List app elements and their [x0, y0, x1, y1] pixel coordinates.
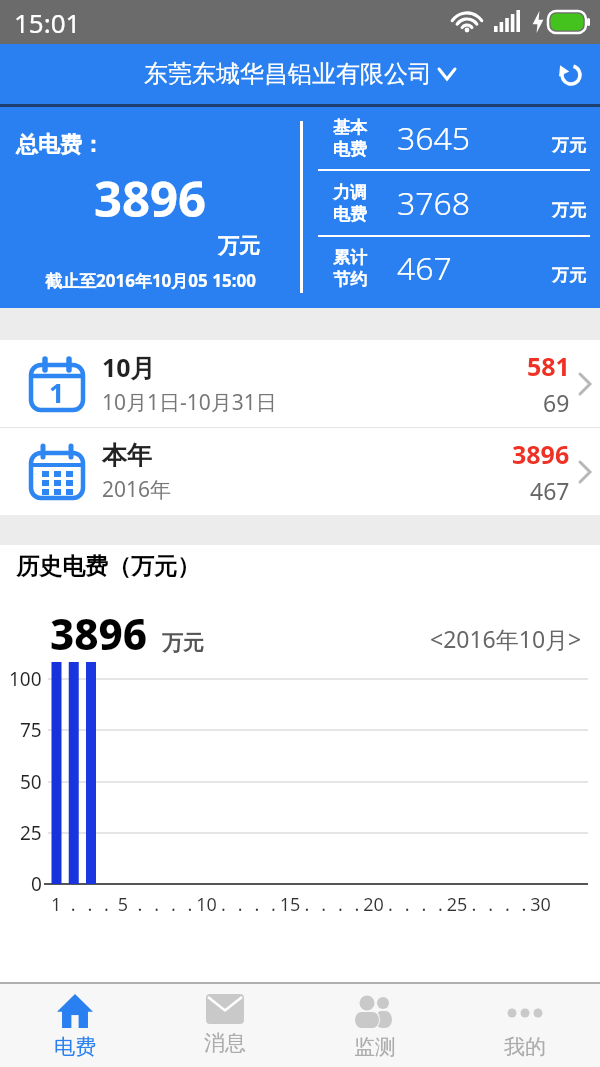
staticText: 2016年 [102, 475, 172, 504]
staticText: 万元 [162, 630, 204, 656]
staticText: 基本 电费 [333, 117, 367, 160]
staticText: 3896 [512, 437, 570, 471]
staticText: 总电费： [16, 131, 104, 159]
staticText: 消息 [204, 1030, 246, 1056]
button[interactable]: 本年 [0, 428, 600, 515]
staticText: 我的 [504, 1034, 546, 1060]
staticText: 截止至2016年10月05 15:00 [45, 269, 256, 292]
staticText: 15:01 [14, 5, 81, 40]
staticText: 万元 [218, 233, 260, 259]
staticText: 本年 [102, 440, 152, 471]
staticText: 力调 电费 [333, 182, 367, 225]
button[interactable]: 消息 [150, 984, 300, 1067]
button[interactable]: 10月 [0, 340, 600, 427]
staticText: 69 [543, 387, 570, 418]
staticText: 万元 [552, 135, 586, 156]
staticText: 监测 [354, 1034, 396, 1060]
staticText: 467 [530, 475, 570, 506]
staticText: 万元 [552, 265, 586, 286]
button[interactable]: <2016年10月> [430, 623, 582, 654]
staticText: 3896 [94, 165, 207, 232]
staticText: 3896 [50, 605, 148, 662]
button[interactable]: 东莞东城华昌铝业有限公司 [144, 59, 456, 89]
staticText: 10月 [102, 350, 156, 384]
button[interactable] [557, 61, 583, 87]
button[interactable]: 监测 [300, 984, 450, 1067]
staticText: 累计 节约 [333, 247, 367, 290]
staticText: 历史电费（万元） [16, 552, 200, 581]
staticText: 东莞东城华昌铝业有限公司 [144, 59, 432, 89]
staticText: 3645 [397, 116, 471, 160]
staticText: 3768 [397, 181, 471, 225]
staticText: 581 [527, 349, 570, 383]
staticText: 万元 [552, 200, 586, 221]
staticText: 467 [397, 246, 452, 290]
staticText: 电费 [54, 1034, 96, 1060]
button[interactable]: 我的 [450, 984, 600, 1067]
button[interactable]: 电费 [0, 984, 150, 1067]
staticText: 10月1日-10月31日 [102, 388, 277, 417]
